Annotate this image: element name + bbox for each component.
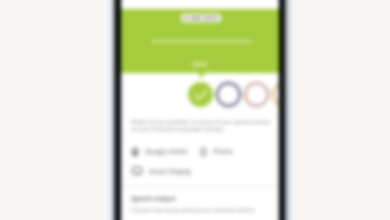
button[interactable]: Indigo voice — [216, 82, 241, 107]
staticText: Might not be available on some of your d… — [131, 118, 270, 132]
button[interactable]: Smart Display — [132, 165, 192, 178]
staticText: Choose how conversational your Assistant… — [131, 206, 255, 213]
staticText: Google Home — [145, 147, 188, 156]
button[interactable]: Coral voice — [244, 82, 269, 107]
staticText: Smart Display — [149, 167, 192, 176]
button[interactable]: Phone — [201, 145, 233, 158]
button[interactable]: Google Home — [132, 145, 188, 158]
button[interactable]: NEW VOICE — [181, 14, 221, 22]
staticText: NEW VOICE — [190, 15, 219, 21]
staticText: Speech output — [131, 194, 176, 203]
button[interactable]: Amber voice — [272, 82, 279, 107]
staticText: Phone — [213, 147, 233, 156]
button[interactable]: Lime voice, selected — [188, 82, 213, 107]
staticText: Lime — [193, 60, 207, 68]
